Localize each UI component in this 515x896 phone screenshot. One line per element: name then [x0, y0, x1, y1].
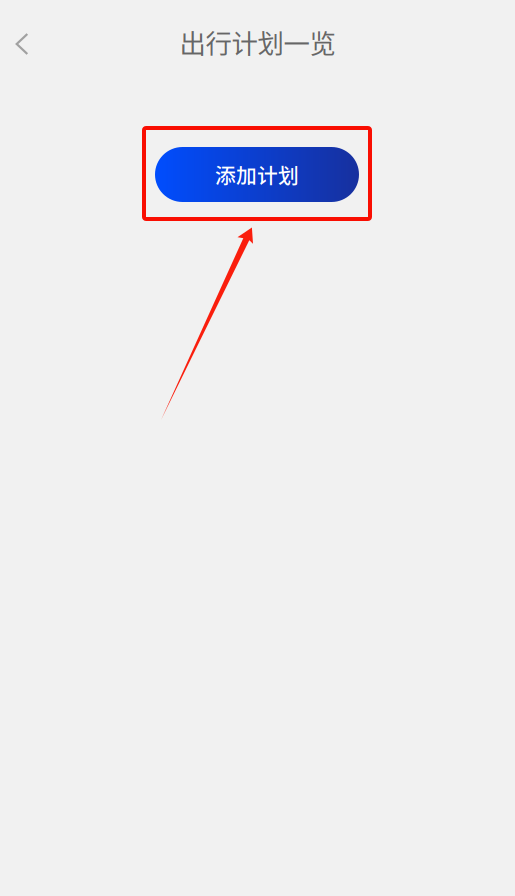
button[interactable]: 添加计划 [155, 147, 359, 202]
staticText: 出行计划一览 [179, 23, 335, 61]
button[interactable]: Back [0, 22, 44, 66]
staticText: 添加计划 [215, 159, 299, 189]
